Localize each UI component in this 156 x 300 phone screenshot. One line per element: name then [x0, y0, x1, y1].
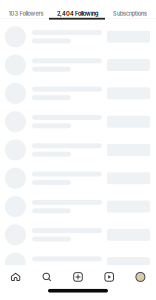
- button[interactable]: Profile: [125, 266, 156, 288]
- button[interactable]: 103 Followers: [0, 10, 52, 18]
- staticText: 2,404 Following: [57, 10, 99, 17]
- button[interactable]: Home: [0, 266, 31, 288]
- button[interactable]: Reels: [94, 266, 125, 288]
- staticText: Subscriptions: [113, 10, 147, 17]
- button[interactable]: Search: [31, 266, 62, 288]
- button[interactable]: Create: [62, 266, 94, 288]
- button[interactable]: 2,404 Following: [52, 10, 104, 18]
- button[interactable]: Subscriptions: [104, 10, 156, 18]
- staticText: 103 Followers: [8, 10, 43, 17]
